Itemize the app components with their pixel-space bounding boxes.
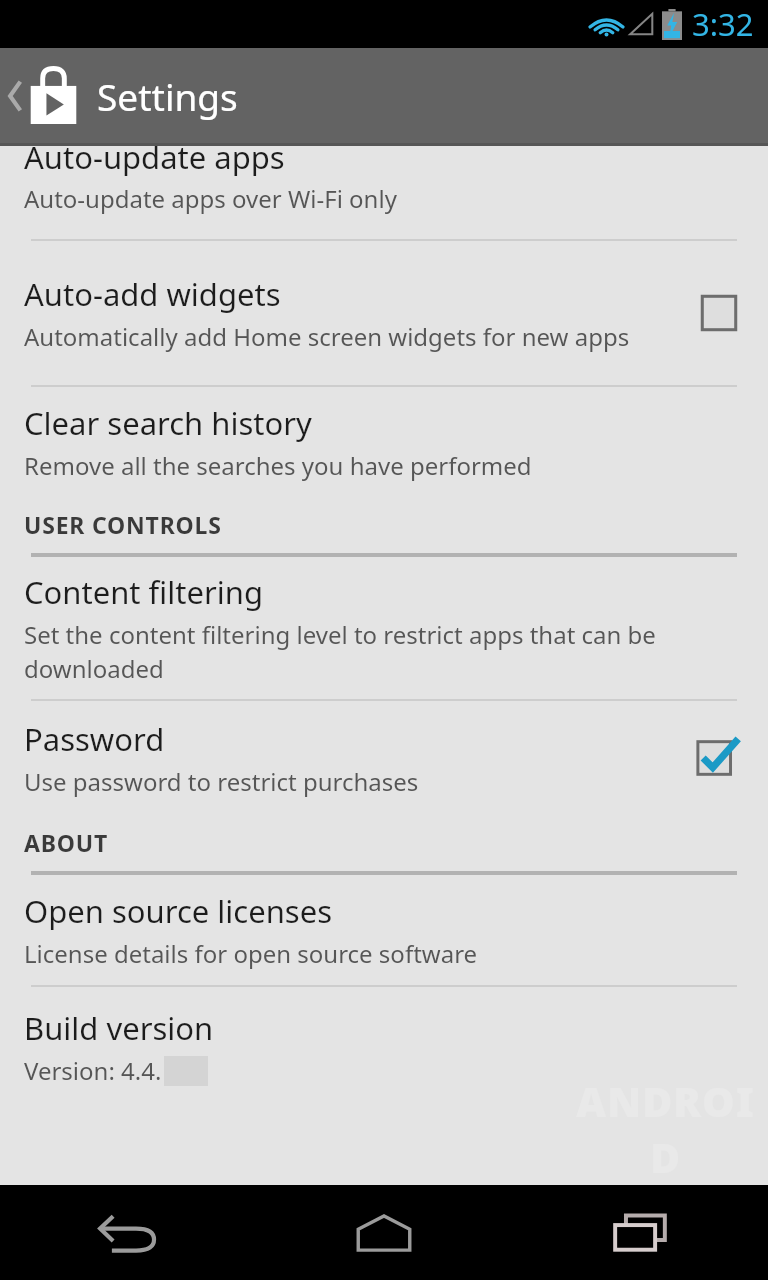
button[interactable]: Build version <box>0 987 768 1185</box>
staticText: Password <box>24 718 165 760</box>
staticText: Content filtering <box>24 571 263 613</box>
staticText: Version: 4.4. <box>24 1054 162 1087</box>
staticText: Auto-update apps over Wi-Fi only <box>24 182 397 215</box>
button[interactable]: Back <box>0 1185 256 1280</box>
button[interactable]: Auto-add widgets <box>0 241 768 385</box>
staticText: Auto-add widgets <box>24 273 281 315</box>
staticText: USER CONTROLS <box>24 509 222 540</box>
button[interactable]: Navigate up <box>8 48 77 143</box>
button[interactable]: Home <box>256 1185 512 1280</box>
staticText: Clear search history <box>24 402 312 444</box>
button[interactable]: Clear search history <box>0 387 768 496</box>
staticText: Settings <box>97 71 238 121</box>
staticText: Build version <box>24 1007 214 1049</box>
staticText: License details for open source software <box>24 937 478 970</box>
button[interactable]: Open source licenses <box>0 875 768 985</box>
staticText: 3:32 <box>692 3 754 45</box>
staticText: ABOUT <box>24 827 109 858</box>
button[interactable]: Content filtering <box>0 557 768 699</box>
staticText: Remove all the searches you have perform… <box>24 449 532 482</box>
button[interactable]: Recent apps <box>512 1185 768 1280</box>
button[interactable]: Password <box>0 701 768 814</box>
staticText: Auto-update apps <box>24 136 285 178</box>
staticText: Automatically add Home screen widgets fo… <box>24 320 630 353</box>
staticText: Set the content filtering level to restr… <box>24 618 698 685</box>
button[interactable]: Auto-update apps <box>0 146 768 239</box>
staticText: Use password to restrict purchases <box>24 765 419 798</box>
staticText: Open source licenses <box>24 890 333 932</box>
